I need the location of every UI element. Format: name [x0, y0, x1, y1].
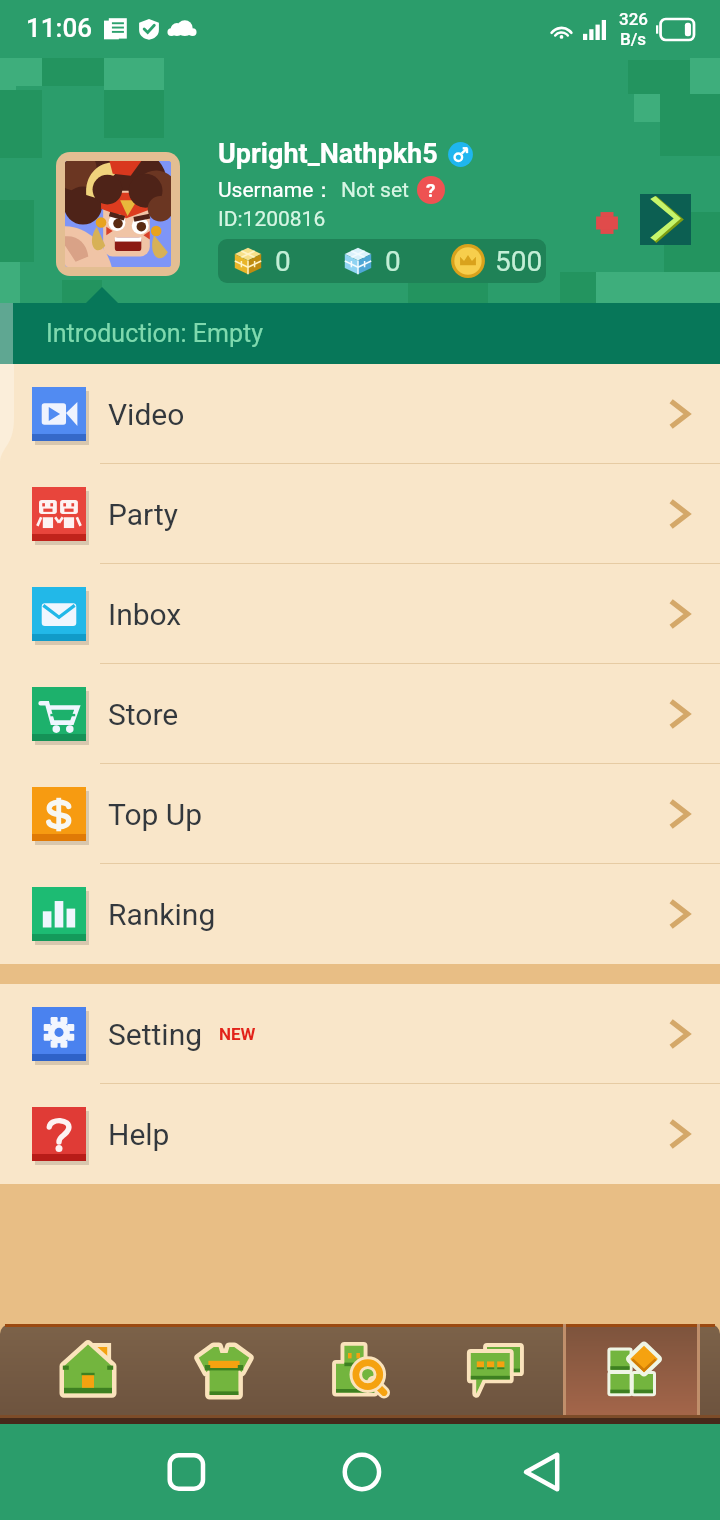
staticText: 0	[385, 245, 401, 278]
staticText: 326	[619, 9, 648, 29]
button[interactable]: Introduction: Empty	[0, 303, 720, 364]
button[interactable]: Chat	[428, 1324, 564, 1418]
button[interactable]: Outfit	[156, 1324, 292, 1418]
button[interactable]: Expand	[640, 194, 691, 245]
staticText: 0	[275, 245, 291, 278]
staticText: B/s	[620, 29, 647, 49]
button[interactable]	[65, 161, 171, 267]
staticText: ID:1200816	[218, 207, 326, 232]
button[interactable]: 500	[437, 239, 546, 283]
staticText: Inbox	[108, 597, 182, 632]
button[interactable]: Top Up	[0, 764, 720, 864]
staticText: Video	[108, 397, 185, 432]
button[interactable]: Store	[0, 664, 720, 764]
staticText: Party	[108, 497, 178, 532]
button[interactable]: Home	[338, 1446, 390, 1498]
button[interactable]: Ranking	[0, 864, 720, 964]
button[interactable]: Home	[20, 1324, 156, 1418]
button[interactable]: Inbox	[0, 564, 720, 664]
staticText: Setting	[108, 1017, 203, 1052]
button[interactable]: 0	[328, 239, 437, 283]
button[interactable]: More	[564, 1324, 700, 1418]
staticText: Help	[108, 1117, 170, 1152]
button[interactable]: Help	[417, 176, 445, 204]
staticText: Store	[108, 697, 179, 732]
staticText: Ranking	[108, 897, 216, 932]
button[interactable]: Setting	[0, 984, 720, 1084]
staticText: ?	[426, 179, 436, 201]
button[interactable]: Recents	[151, 1446, 203, 1498]
button[interactable]: 0	[218, 239, 328, 283]
staticText: 500	[495, 245, 543, 278]
button[interactable]: Search	[292, 1324, 428, 1418]
staticText: 11:06	[26, 13, 92, 43]
staticText: Top Up	[108, 797, 203, 832]
staticText: Not set	[341, 178, 409, 203]
staticText: Username：	[218, 177, 335, 203]
button[interactable]: Party	[0, 464, 720, 564]
button[interactable]: Video	[0, 364, 720, 464]
staticText: Upright_Nathpkh5	[218, 138, 438, 170]
staticText: NEW	[219, 1024, 256, 1044]
button[interactable]: Back	[526, 1446, 578, 1498]
staticText: Introduction: Empty	[46, 319, 263, 348]
button[interactable]: Help	[0, 1084, 720, 1184]
